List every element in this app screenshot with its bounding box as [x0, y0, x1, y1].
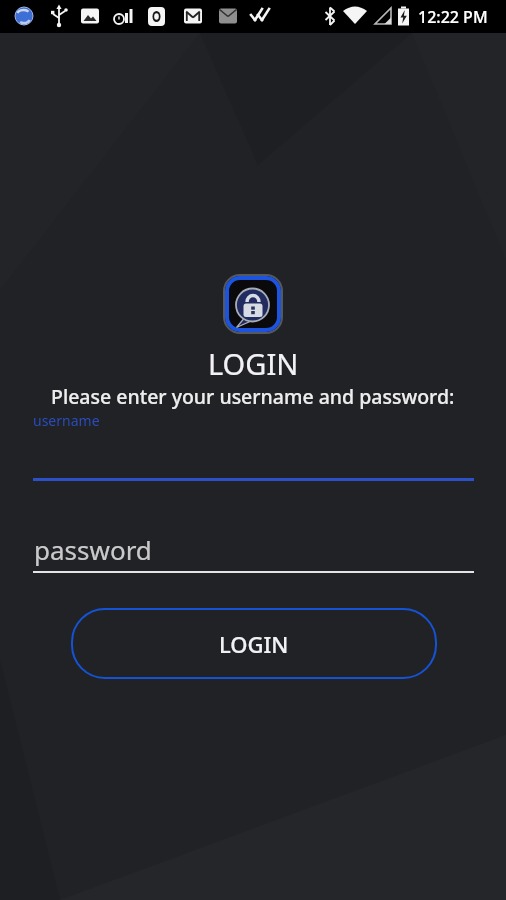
- staticText: password: [34, 532, 152, 567]
- button[interactable]: LOGIN: [71, 608, 437, 679]
- staticText: LOGIN: [208, 344, 299, 383]
- staticText: LOGIN: [219, 629, 289, 659]
- staticText: 12:22 PM: [418, 6, 488, 28]
- staticText: Please enter your username and password:: [51, 383, 455, 410]
- button[interactable]: username: [33, 410, 474, 481]
- button[interactable]: password: [33, 528, 474, 573]
- staticText: username: [33, 411, 100, 430]
